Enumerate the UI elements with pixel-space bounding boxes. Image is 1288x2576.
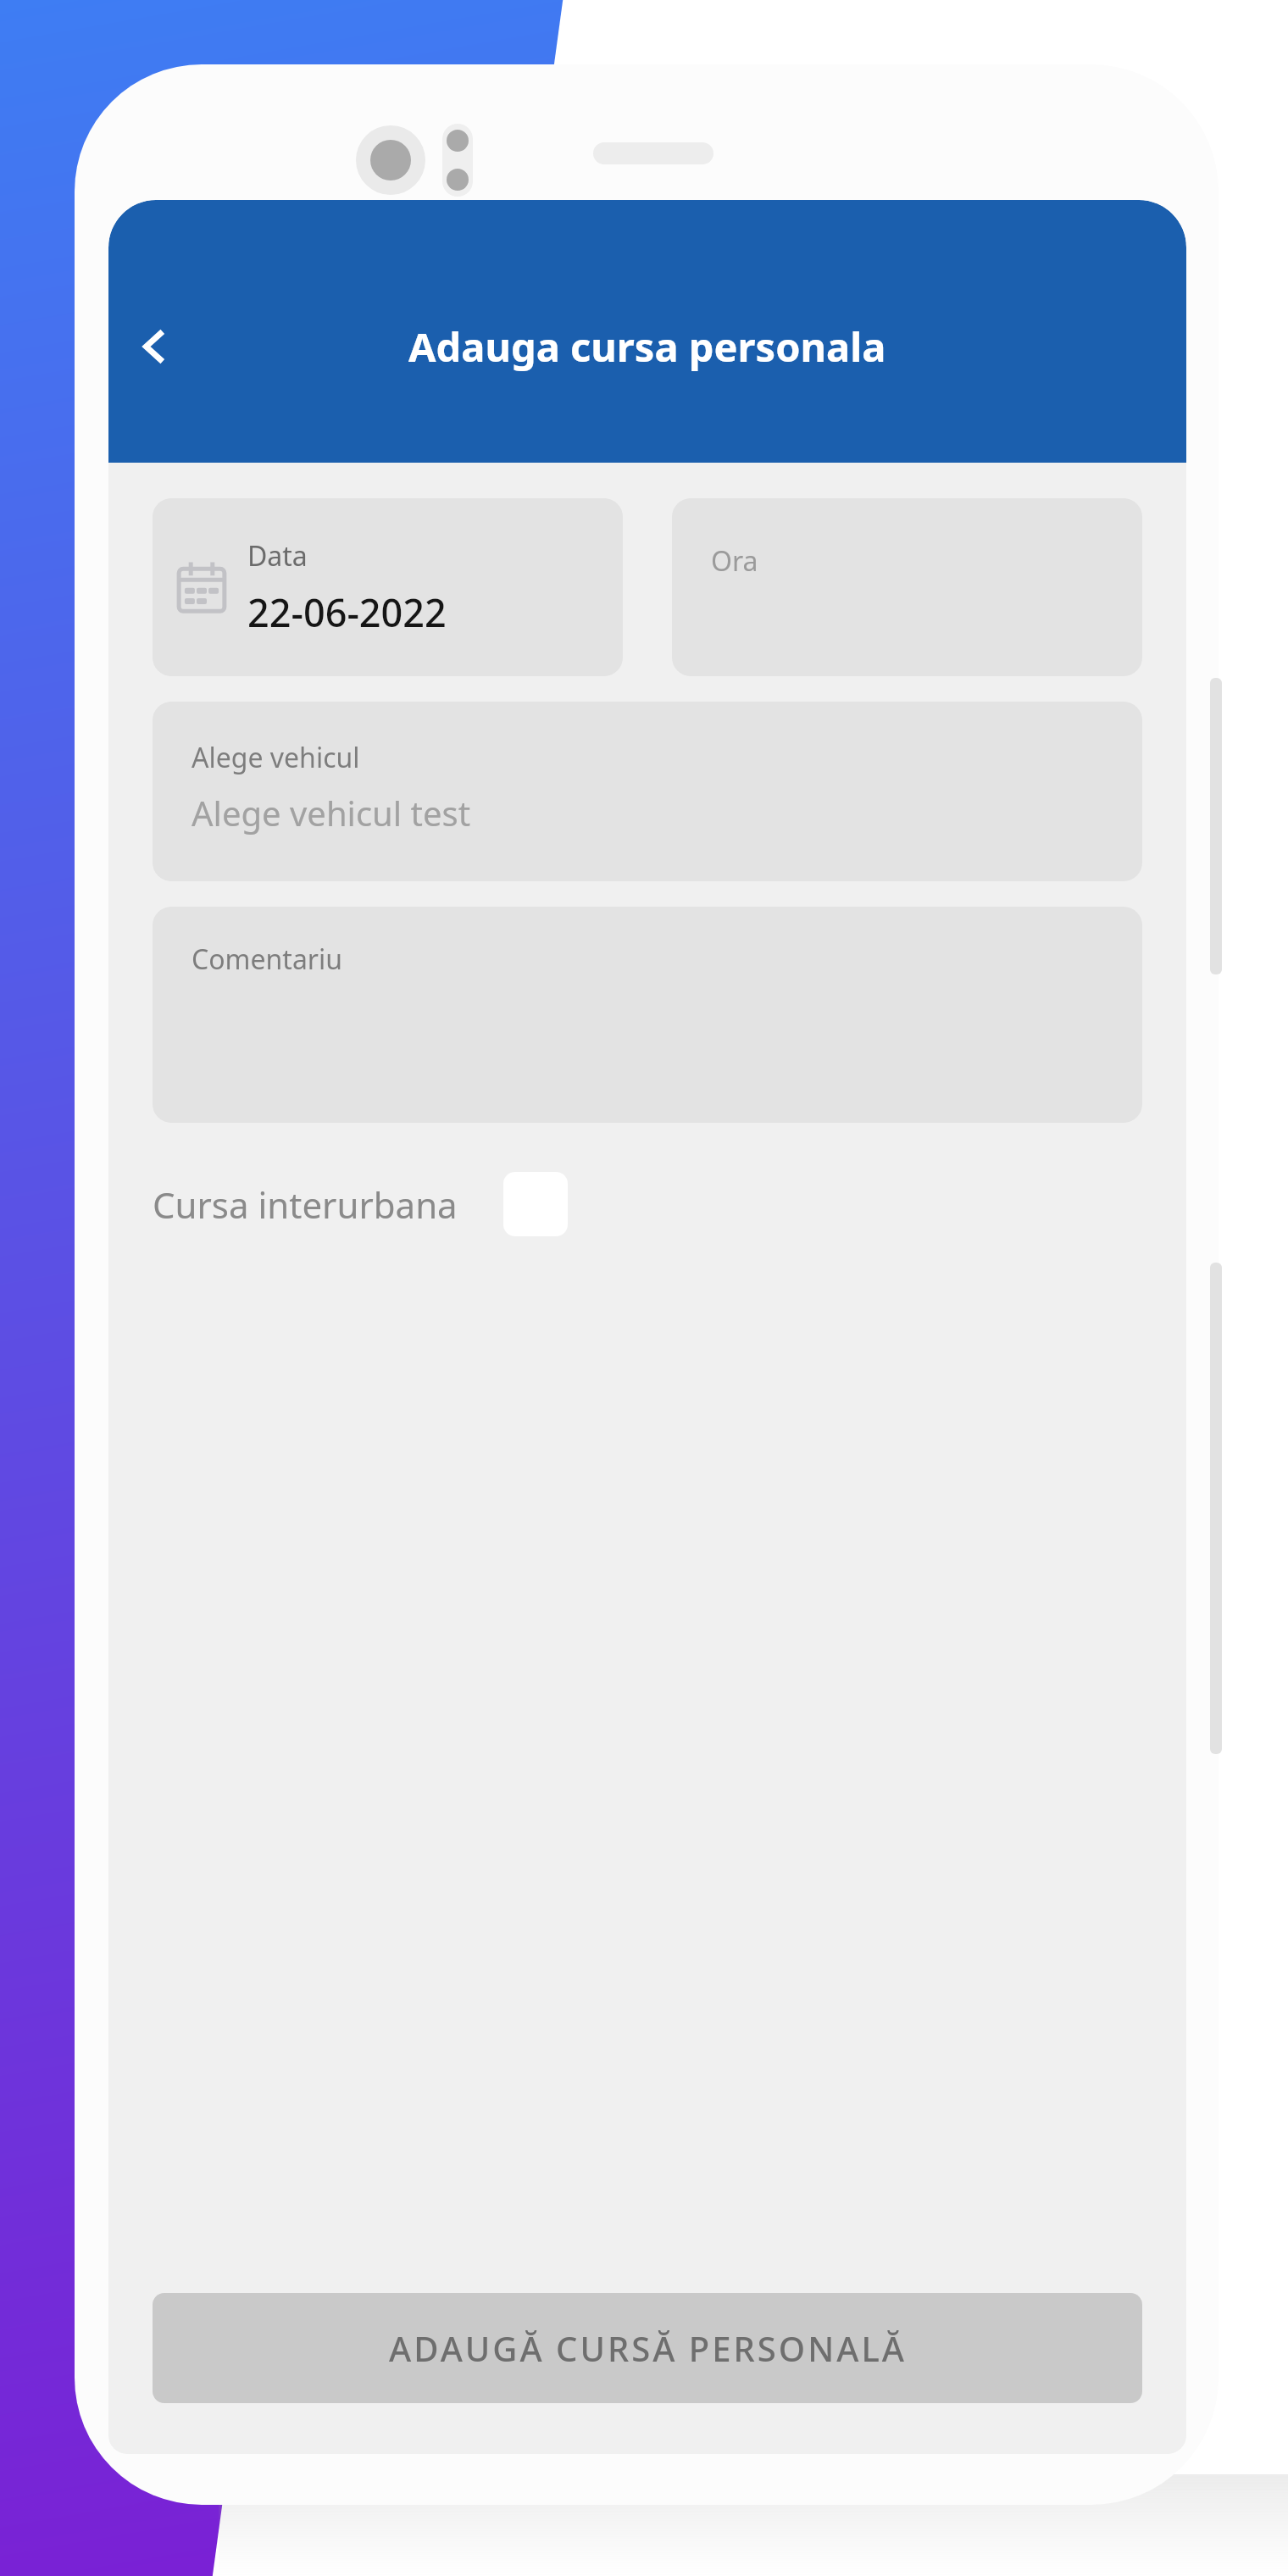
button[interactable]: Ora: [672, 498, 1142, 676]
button[interactable]: Back: [108, 300, 202, 393]
staticText: Ora: [711, 542, 758, 580]
staticText: ADAUGĂ CURSĂ PERSONALĂ: [389, 2325, 907, 2371]
staticText: Alege vehicul: [192, 739, 360, 776]
staticText: Cursa interurbana: [153, 1180, 458, 1229]
button[interactable]: Alege vehicul: [153, 702, 1142, 881]
button[interactable]: ADAUGĂ CURSĂ PERSONALĂ: [153, 2293, 1142, 2403]
button[interactable]: Cursa interurbana: [153, 1163, 1142, 1245]
button[interactable]: Comentariu: [153, 907, 1142, 1123]
staticText: 22-06-2022: [247, 586, 447, 638]
staticText: Alege vehicul test: [192, 790, 471, 836]
staticText: Data: [247, 537, 308, 575]
staticText: Comentariu: [192, 941, 343, 978]
staticText: Adauga cursa personala: [408, 319, 886, 374]
button[interactable]: Data: [153, 498, 623, 676]
